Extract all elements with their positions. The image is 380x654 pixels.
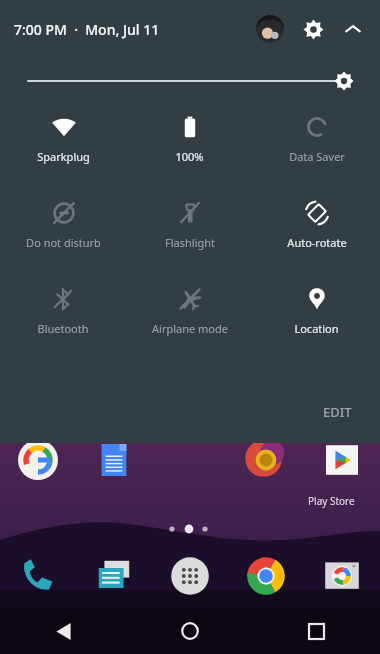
button[interactable]: Docs (86, 432, 142, 488)
staticText: 7:00 PM · Mon, Jul 11 (14, 20, 160, 39)
button[interactable]: Home (126, 608, 253, 654)
staticText: Auto-rotate (287, 235, 347, 250)
staticText: Do not disturb (26, 235, 101, 250)
staticText: Flashlight (165, 235, 215, 250)
button[interactable]: All apps (162, 548, 218, 604)
button[interactable]: Photos app (238, 432, 294, 488)
button[interactable]: 100% (126, 114, 253, 176)
button[interactable]: EDIT (317, 399, 358, 425)
button[interactable]: Airplane mode (126, 286, 253, 348)
button[interactable]: Camera (314, 548, 370, 604)
button[interactable]: Location (253, 286, 380, 348)
staticText: Location (294, 321, 339, 336)
button[interactable]: Do not disturb (0, 200, 126, 262)
staticText: 100% (175, 149, 204, 164)
button[interactable]: Brightness (28, 66, 352, 96)
button[interactable]: Sparkplug (0, 114, 126, 176)
button[interactable]: Google (10, 432, 66, 488)
button[interactable]: Auto-rotate (253, 200, 380, 262)
button[interactable]: Collapse (338, 14, 368, 44)
button[interactable]: Play Store (314, 432, 370, 488)
staticText: Data Saver (289, 149, 345, 164)
button[interactable]: Settings (298, 14, 328, 44)
button[interactable]: Back (0, 608, 126, 654)
staticText: Bluetooth (37, 321, 89, 336)
button[interactable]: Messages (86, 548, 142, 604)
button[interactable]: Bluetooth (0, 286, 126, 348)
button[interactable]: Phone (10, 548, 66, 604)
staticText: Airplane mode (152, 321, 228, 336)
button[interactable]: Chrome (238, 548, 294, 604)
button[interactable]: Recent apps (253, 608, 380, 654)
button[interactable]: Flashlight (126, 200, 253, 262)
button[interactable]: User profile (256, 15, 284, 43)
staticText: Play Store (308, 494, 355, 508)
staticText: EDIT (323, 403, 352, 421)
button[interactable]: Data Saver (253, 114, 380, 176)
staticText: Sparkplug (37, 149, 90, 164)
